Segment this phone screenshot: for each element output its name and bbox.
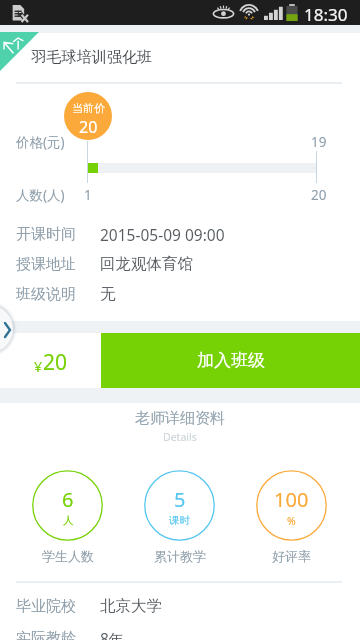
staticText: 1 xyxy=(84,186,92,204)
staticText: 毕业院校 xyxy=(16,597,76,616)
staticText: 老师详细资料 xyxy=(135,409,225,428)
staticText: 价格(元) xyxy=(16,133,65,151)
staticText: 实际教龄 xyxy=(16,629,76,640)
staticText: 人 xyxy=(63,514,74,527)
staticText: 开课时间 xyxy=(16,225,76,244)
staticText: 100 xyxy=(274,486,309,513)
staticText: 20 xyxy=(43,348,68,377)
staticText: 累计教学 xyxy=(154,548,206,564)
staticText: 8年 xyxy=(100,628,125,640)
staticText: 18:30 xyxy=(304,3,348,26)
staticText: 6 xyxy=(62,486,74,513)
staticText: 学生人数 xyxy=(42,548,94,564)
staticText: 回龙观体育馆 xyxy=(100,254,193,274)
staticText: 加入班级 xyxy=(197,350,265,371)
staticText: % xyxy=(287,514,296,528)
staticText: 北京大学 xyxy=(100,596,162,616)
staticText: 好评率 xyxy=(272,548,311,564)
staticText: 无 xyxy=(100,284,116,304)
staticText: 班级说明 xyxy=(16,285,76,304)
staticText: 20 xyxy=(311,186,327,204)
staticText: ¥ xyxy=(34,357,43,376)
button[interactable]: Back xyxy=(0,32,39,71)
staticText: 2015-05-09 09:00 xyxy=(100,224,225,245)
staticText: 羽毛球培训强化班 xyxy=(31,47,153,66)
staticText: 19 xyxy=(311,133,327,151)
button[interactable]: 加入班级 xyxy=(101,333,360,388)
staticText: 课时 xyxy=(169,514,190,527)
staticText: 5 xyxy=(174,486,186,513)
staticText: 20 xyxy=(79,116,98,138)
button[interactable]: Expand details xyxy=(0,303,15,355)
staticText: Details xyxy=(163,430,197,444)
staticText: 人数(人) xyxy=(16,186,65,204)
staticText: 当前价 xyxy=(72,101,105,115)
staticText: 授课地址 xyxy=(16,255,76,274)
